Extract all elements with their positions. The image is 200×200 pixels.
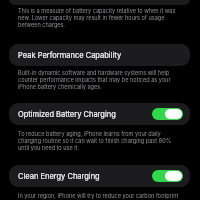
button[interactable]: Peak Performance Capability [9,44,190,66]
staticText: counter performance impacts that may be … [18,77,171,84]
staticText: This is a measure of battery capacity re… [18,8,176,15]
staticText: To reduce battery aging, iPhone learns f… [18,131,161,138]
staticText: Peak Performance Capability [18,51,122,60]
staticText: iPhone battery chemically ages. [18,84,102,91]
staticText: between charges. [18,22,66,29]
button[interactable]: Clean Energy Charging [9,165,190,187]
staticText: until you need to use it. [18,145,80,152]
staticText: Optimized Battery Charging [18,110,116,119]
staticText: charging routine so it can wait to finis… [18,138,172,145]
staticText: In your region, iPhone will try to reduc… [18,193,179,200]
staticText: Clean Energy Charging [18,172,100,181]
button[interactable]: Optimized Battery Charging [9,103,190,125]
staticText: new. Lower capacity may result in fewer … [18,15,165,22]
staticText: Built-in dynamic software and hardware s… [18,70,170,77]
button[interactable]: Optimized Battery Charging toggle, on [152,108,183,120]
button[interactable]: Clean Energy Charging toggle, on [152,170,183,182]
